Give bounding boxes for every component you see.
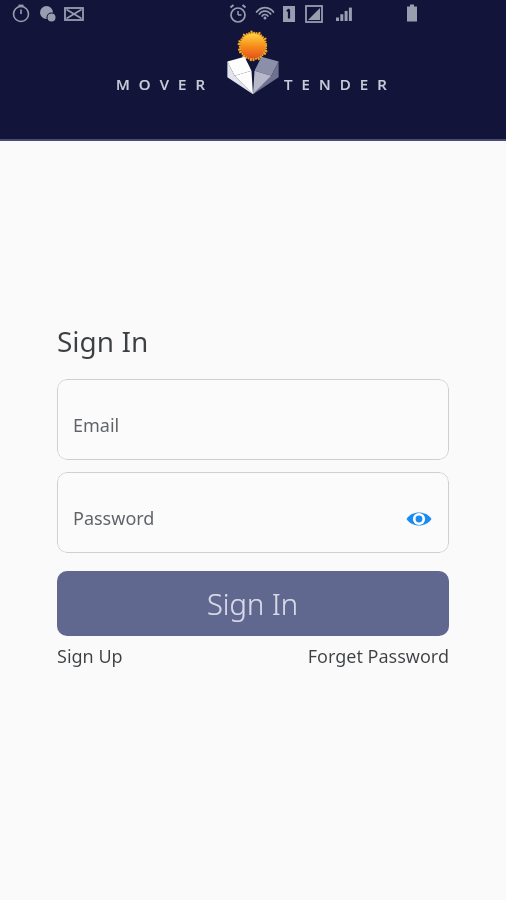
staticText: M O V E R — [116, 74, 208, 94]
staticText: Sign In — [207, 584, 299, 623]
button[interactable]: Show password — [399, 499, 439, 539]
staticText: T E N D E R — [284, 74, 390, 94]
staticText: Sign Up — [57, 644, 123, 669]
button[interactable]: Email — [57, 379, 449, 460]
staticText: Sign In — [57, 322, 149, 360]
staticText: Email — [73, 413, 120, 438]
staticText: Forget Password — [307, 644, 449, 669]
button[interactable]: Sign Up — [57, 644, 123, 669]
button[interactable]: Password — [57, 472, 449, 553]
button[interactable]: Forget Password — [307, 644, 449, 669]
button[interactable]: Sign In — [57, 571, 449, 636]
staticText: Password — [73, 506, 155, 531]
